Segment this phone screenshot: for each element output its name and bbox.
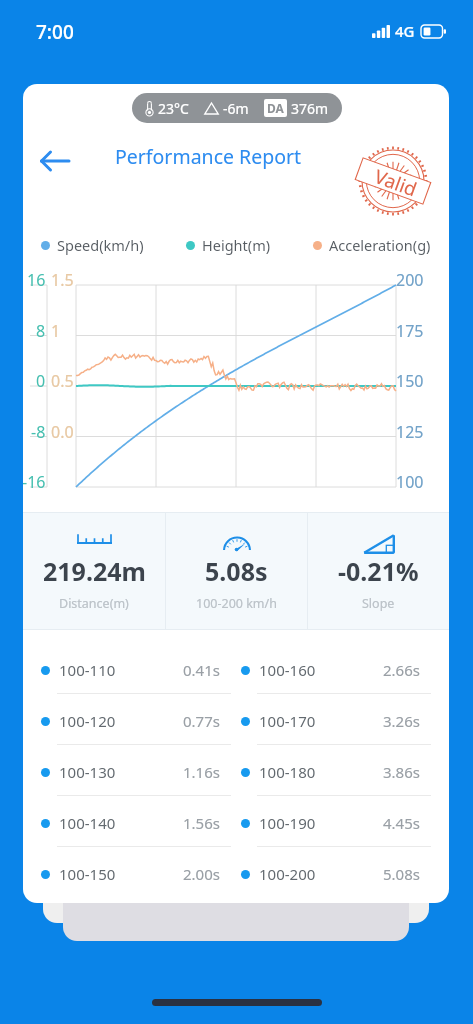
button[interactable]: -0.21% bbox=[308, 512, 449, 630]
button[interactable]: 100-140 bbox=[41, 797, 431, 848]
staticText: 1.5 bbox=[51, 269, 74, 291]
staticText: Speed(km/h) bbox=[57, 235, 144, 255]
staticText: 100 bbox=[396, 471, 424, 493]
button[interactable]: 100-130 bbox=[41, 746, 431, 797]
button[interactable]: 219.24m bbox=[23, 512, 165, 630]
staticText: 0.5 bbox=[51, 370, 74, 392]
staticText: 100-160 bbox=[259, 660, 316, 680]
staticText: 0.77s bbox=[183, 711, 220, 731]
button[interactable]: Back bbox=[33, 139, 77, 183]
button[interactable]: 5.08s bbox=[166, 512, 307, 630]
staticText: 100-150 bbox=[59, 864, 116, 884]
staticText: 100-190 bbox=[259, 813, 316, 833]
staticText: 100-110 bbox=[59, 660, 116, 680]
button[interactable]: 23°C bbox=[132, 93, 342, 123]
staticText: 100-200 bbox=[259, 864, 316, 884]
staticText: -8 bbox=[31, 421, 46, 443]
staticText: 150 bbox=[396, 370, 424, 392]
staticText: 1.16s bbox=[183, 762, 220, 782]
staticText: 0.0 bbox=[51, 421, 74, 443]
staticText: -0.21% bbox=[338, 554, 419, 588]
staticText: 0.41s bbox=[183, 660, 220, 680]
staticText: 3.26s bbox=[383, 711, 420, 731]
staticText: 100-130 bbox=[59, 762, 116, 782]
staticText: 16 bbox=[27, 269, 46, 291]
staticText: 100-140 bbox=[59, 813, 116, 833]
staticText: -16 bbox=[23, 471, 46, 493]
staticText: 7:00 bbox=[36, 19, 74, 45]
staticText: 219.24m bbox=[43, 554, 146, 588]
staticText: 4G bbox=[395, 21, 415, 41]
staticText: 100-170 bbox=[259, 711, 316, 731]
staticText: 8 bbox=[36, 320, 46, 342]
staticText: 23°C bbox=[158, 99, 189, 118]
staticText: 2.00s bbox=[183, 864, 220, 884]
staticText: 100-120 bbox=[59, 711, 116, 731]
staticText: 100-180 bbox=[259, 762, 316, 782]
button[interactable]: 100-150 bbox=[41, 848, 431, 899]
button[interactable]: 100-110 bbox=[41, 644, 431, 695]
staticText: Height(m) bbox=[202, 235, 271, 255]
staticText: Slope bbox=[362, 595, 395, 612]
staticText: Valid bbox=[371, 163, 421, 203]
staticText: 3.86s bbox=[383, 762, 420, 782]
staticText: 5.08s bbox=[205, 554, 268, 588]
button[interactable]: 100-120 bbox=[41, 695, 431, 746]
staticText: 175 bbox=[396, 320, 424, 342]
staticText: 200 bbox=[396, 269, 424, 291]
staticText: 100-200 km/h bbox=[196, 595, 277, 612]
staticText: 1.56s bbox=[183, 813, 220, 833]
staticText: 0 bbox=[36, 370, 46, 392]
staticText: 5.08s bbox=[383, 864, 420, 884]
staticText: -6m bbox=[223, 99, 249, 118]
staticText: 125 bbox=[396, 421, 424, 443]
staticText: DA bbox=[267, 100, 284, 116]
staticText: Performance Report bbox=[115, 143, 302, 170]
staticText: Acceleration(g) bbox=[329, 235, 431, 255]
staticText: 2.66s bbox=[383, 660, 420, 680]
staticText: Distance(m) bbox=[59, 595, 129, 612]
staticText: 376m bbox=[291, 99, 329, 118]
staticText: 4.45s bbox=[383, 813, 420, 833]
staticText: 1 bbox=[51, 320, 61, 342]
